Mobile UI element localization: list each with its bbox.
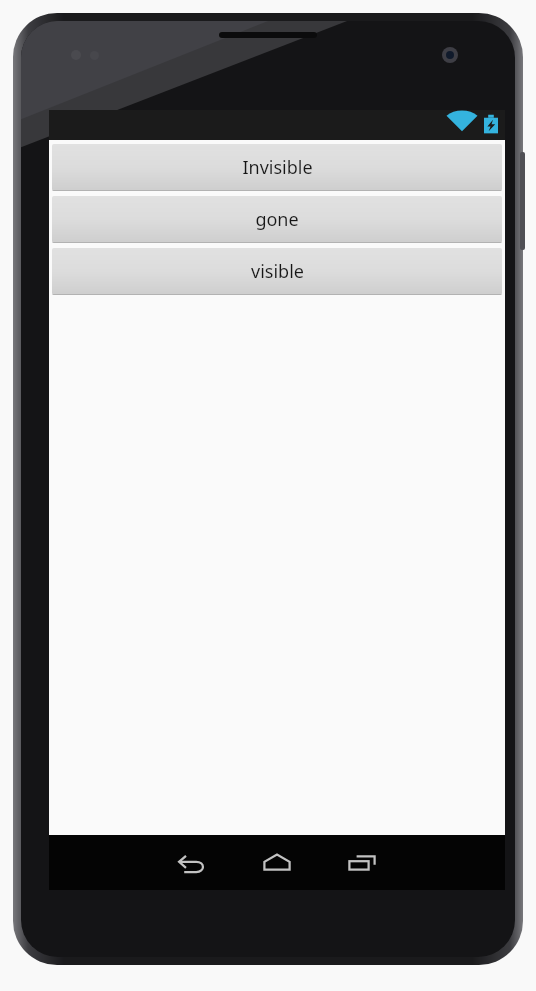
button[interactable]: Invisible	[52, 144, 502, 191]
staticText: Invisible	[242, 155, 313, 180]
button[interactable]: Back	[159, 835, 225, 890]
button[interactable]: Recent apps	[329, 835, 395, 890]
staticText: gone	[255, 207, 299, 232]
staticText: visible	[251, 259, 304, 284]
button[interactable]: visible	[52, 248, 502, 295]
button[interactable]: gone	[52, 196, 502, 243]
button[interactable]: Home	[244, 835, 310, 890]
